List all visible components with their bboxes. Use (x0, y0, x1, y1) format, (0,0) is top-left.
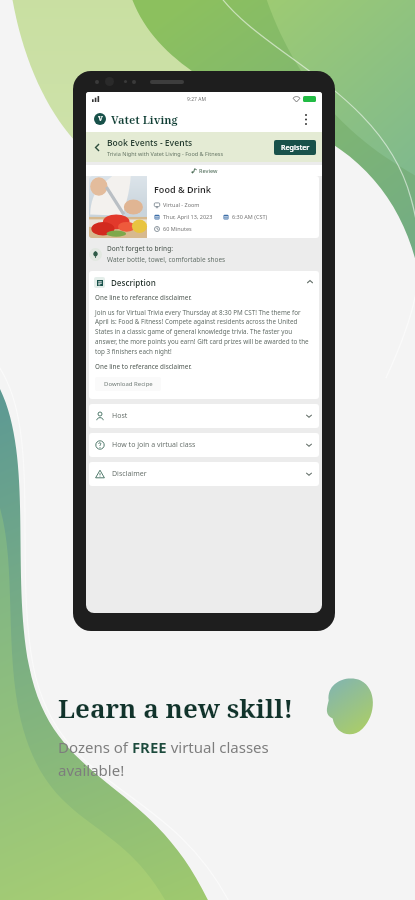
staticText: Book Events - Events (107, 137, 193, 149)
button[interactable]: Host (89, 404, 319, 428)
staticText: 60 Minutes (163, 225, 192, 232)
staticText: Learn a new skill! (58, 690, 294, 725)
staticText: V (98, 114, 103, 124)
button[interactable]: Register (274, 140, 316, 155)
staticText: Dozens of FREE virtual classes available… (58, 737, 269, 780)
staticText: Don't forget to bring: (107, 244, 173, 253)
staticText: Trivia Night with Vatet Living - Food & … (107, 150, 224, 157)
staticText: One line to referance disclaimer. (95, 362, 192, 371)
button[interactable]: Description (89, 271, 319, 293)
staticText: 6:30 AM (CST) (232, 213, 268, 220)
button[interactable]: How to join a virtual class (89, 433, 319, 457)
staticText: Virtual - Zoom (163, 201, 200, 208)
staticText: How to join a virtual class (112, 440, 196, 450)
button[interactable]: Food & Drink (89, 176, 319, 238)
staticText: Disclaimer (112, 469, 147, 479)
staticText: Food & Drink (154, 183, 212, 195)
staticText: 9:27 AM (187, 96, 206, 103)
button[interactable]: More options (298, 111, 314, 127)
staticText: Download Recipe (104, 380, 153, 388)
staticText: Host (112, 411, 128, 421)
staticText: Register (281, 143, 310, 153)
staticText: Join us for Virtual Trivia every Thursda… (95, 308, 313, 356)
staticText: Water bottle, towel, comfortable shoes (107, 255, 226, 264)
staticText: Review (199, 167, 218, 174)
staticText: Thur, April 13, 2023 (163, 213, 213, 220)
button[interactable]: Disclaimer (89, 462, 319, 486)
button[interactable]: Back (90, 140, 104, 154)
staticText: Description (111, 277, 156, 288)
staticText: Vatet Living (111, 112, 178, 127)
button[interactable]: Download Recipe (95, 377, 161, 391)
staticText: One line to referance disclaimer. (95, 293, 192, 302)
